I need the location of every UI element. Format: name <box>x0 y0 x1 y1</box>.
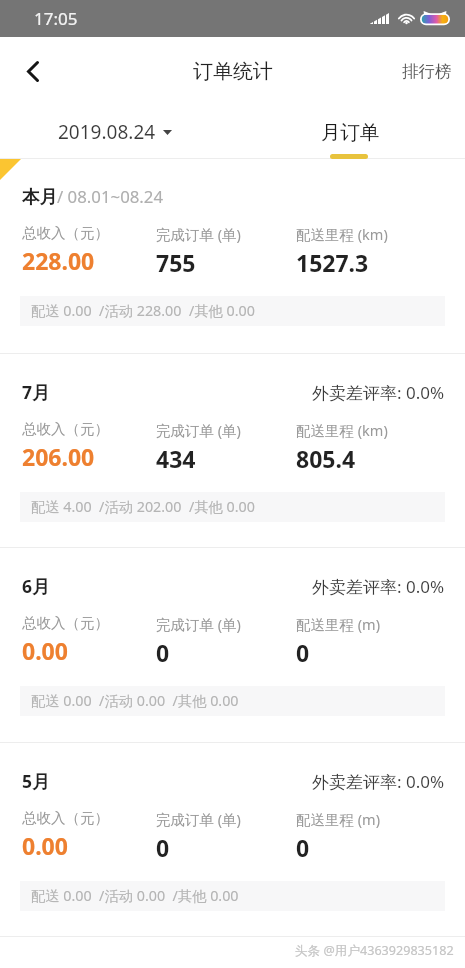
staticText: 配送里程 (m) <box>296 614 381 634</box>
staticText: 订单统计 <box>193 59 273 84</box>
staticText: 0.00 <box>22 830 68 861</box>
staticText: 配送 0.00 /活动 0.00 /其他 0.00 <box>31 886 239 906</box>
staticText: 228.00 <box>22 245 95 276</box>
staticText: 总收入（元） <box>22 809 109 827</box>
staticText: 206.00 <box>22 441 95 472</box>
button[interactable]: 排行榜 <box>402 53 452 90</box>
button[interactable]: 2019.08.24 <box>58 119 172 145</box>
staticText: 配送 0.00 /活动 0.00 /其他 0.00 <box>31 691 239 711</box>
staticText: 5月 <box>22 769 50 793</box>
staticText: 本月/ 08.01~08.24 <box>22 185 164 208</box>
staticText: 月订单 <box>321 120 380 145</box>
staticText: 完成订单 (单) <box>156 614 241 634</box>
staticText: 6月 <box>22 574 50 598</box>
staticText: 配送 4.00 /活动 202.00 /其他 0.00 <box>31 497 255 517</box>
staticText: 外卖差评率: 0.0% <box>312 575 445 598</box>
staticText: 755 <box>156 247 196 278</box>
staticText: 完成订单 (单) <box>156 420 241 440</box>
staticText: 17:05 <box>34 7 78 30</box>
staticText: 0 <box>156 832 170 863</box>
staticText: 0 <box>296 832 310 863</box>
staticText: 0.00 <box>22 635 68 666</box>
staticText: 805.4 <box>296 443 356 474</box>
staticText: 配送 0.00 /活动 228.00 /其他 0.00 <box>31 301 255 321</box>
staticText: 排行榜 <box>402 61 452 82</box>
staticText: 完成订单 (单) <box>156 224 241 244</box>
staticText: 总收入（元） <box>22 224 109 242</box>
staticText: 总收入（元） <box>22 614 109 632</box>
staticText: 总收入（元） <box>22 420 109 438</box>
staticText: 头条 @用户4363929835182 <box>295 942 454 959</box>
staticText: 外卖差评率: 0.0% <box>312 381 445 404</box>
staticText: 7月 <box>22 380 50 404</box>
button[interactable]: 月订单 <box>321 105 380 145</box>
staticText: 配送里程 (km) <box>296 420 388 440</box>
staticText: 0 <box>296 637 310 668</box>
staticText: 0 <box>156 637 170 668</box>
staticText: 1527.3 <box>296 247 369 278</box>
staticText: 配送里程 (m) <box>296 809 381 829</box>
staticText: 配送里程 (km) <box>296 224 388 244</box>
staticText: 2019.08.24 <box>58 119 156 145</box>
staticText: 434 <box>156 443 196 474</box>
button[interactable]: Back <box>0 37 66 105</box>
staticText: 完成订单 (单) <box>156 809 241 829</box>
staticText: 外卖差评率: 0.0% <box>312 770 445 793</box>
